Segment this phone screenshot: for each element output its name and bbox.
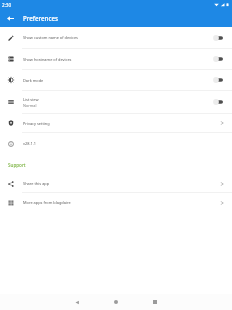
staticText: Show custom name of devices [23,35,78,40]
button[interactable]: Toggle [207,49,229,69]
button[interactable]: v28.1.1 [0,133,232,154]
button[interactable]: Back [69,294,85,310]
staticText: Share this app [23,181,50,186]
button[interactable]: Dark mode [0,70,232,90]
button[interactable]: Toggle [207,27,229,48]
staticText: More apps from blagdaire [23,200,71,205]
button[interactable]: Back [0,11,21,25]
button[interactable]: List view [0,91,232,113]
button[interactable]: Show hostname of devices [0,49,232,69]
button[interactable]: Privacy setting [0,114,232,132]
staticText: List view [23,97,39,102]
staticText: Dark mode [23,78,44,83]
button[interactable]: Show custom name of devices [0,27,232,48]
button[interactable]: More apps from blagdaire [0,193,232,212]
staticText: Support [8,162,26,168]
staticText: Privacy setting [23,121,50,126]
staticText: Preferences [23,14,59,22]
button[interactable]: Home [108,294,124,310]
staticText: 2:30 [2,2,12,8]
staticText: Normal [23,103,37,108]
staticText: v28.1.1 [23,141,36,146]
button[interactable]: Share this app [0,175,232,192]
button[interactable]: Toggle [207,70,229,90]
button[interactable]: Toggle [207,91,229,113]
staticText: Show hostname of devices [23,57,72,62]
button[interactable]: Recents [147,294,163,310]
